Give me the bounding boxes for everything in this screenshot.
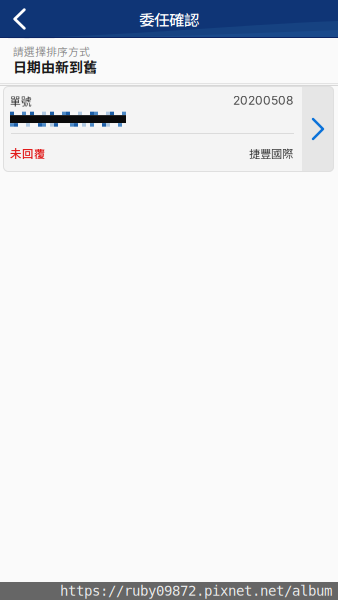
staticText: https://ruby09872.pixnet.net/album (60, 583, 332, 599)
staticText: 未回覆 (10, 145, 46, 161)
staticText: 委任確認 (139, 8, 199, 30)
staticText: 單號 (10, 93, 32, 109)
staticText: 請選擇排序方式 (13, 43, 90, 59)
button[interactable]: Back (0, 0, 39, 38)
staticText: 20200508 (233, 93, 293, 107)
button[interactable]: Open detail (302, 86, 334, 172)
staticText: 日期由新到舊 (13, 56, 97, 77)
staticText: 捷豐國際 (249, 145, 293, 161)
